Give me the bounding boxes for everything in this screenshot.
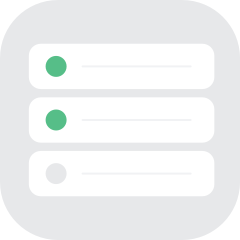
button[interactable]: First item, completed xyxy=(29,44,214,89)
button[interactable]: Second item, completed xyxy=(29,97,214,143)
button[interactable]: Third item, not completed xyxy=(29,151,214,196)
